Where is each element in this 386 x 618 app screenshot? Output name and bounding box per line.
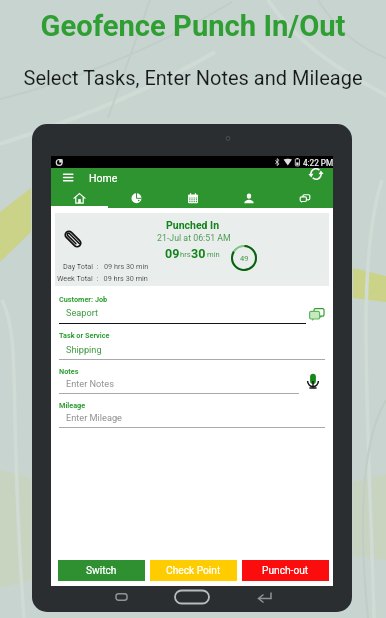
staticText: Shipping <box>66 344 102 355</box>
staticText: Geofence Punch In/Out <box>0 9 386 43</box>
staticText: 09 <box>165 246 180 261</box>
staticText: Mileage <box>59 401 86 410</box>
button[interactable]: Home <box>51 188 108 208</box>
button[interactable]: Switch <box>58 560 145 581</box>
staticText: 49 <box>240 254 249 263</box>
staticText: 21-Jul at 06:51 AM <box>157 233 231 243</box>
staticText: 30 <box>191 246 206 261</box>
staticText: Check Point <box>166 565 221 577</box>
staticText: Home <box>89 172 118 184</box>
staticText: Task or Service <box>59 331 110 340</box>
button[interactable]: Profile <box>221 188 277 208</box>
staticText: Punched In <box>166 219 220 231</box>
staticText: Enter Notes <box>66 378 114 389</box>
staticText: Punch-out <box>262 565 309 577</box>
button[interactable]: Jobs <box>277 188 333 208</box>
staticText: Seaport <box>66 307 99 318</box>
button[interactable]: Refresh <box>305 166 327 188</box>
staticText: hrs <box>180 250 191 259</box>
button[interactable]: Check Point <box>150 560 237 581</box>
staticText: Select Tasks, Enter Notes and Mileage <box>0 66 386 89</box>
staticText: Notes <box>59 367 79 376</box>
staticText: Enter Mileage <box>66 412 122 423</box>
button[interactable]: Schedule <box>165 188 221 208</box>
staticText: 4:22 PM <box>303 158 334 168</box>
button[interactable]: Menu <box>58 168 78 188</box>
button[interactable]: Messages <box>309 308 325 320</box>
button[interactable]: Voice input <box>306 373 320 390</box>
button[interactable]: Reports <box>108 188 165 208</box>
staticText: Customer: Job <box>59 295 108 304</box>
button[interactable]: Punch-out <box>242 560 329 581</box>
staticText: Day Total : 09 hrs 30 min <box>63 262 149 271</box>
staticText: Week Total : 09 hrs 30 min <box>57 274 148 283</box>
staticText: min <box>207 250 220 259</box>
staticText: Switch <box>86 565 117 577</box>
